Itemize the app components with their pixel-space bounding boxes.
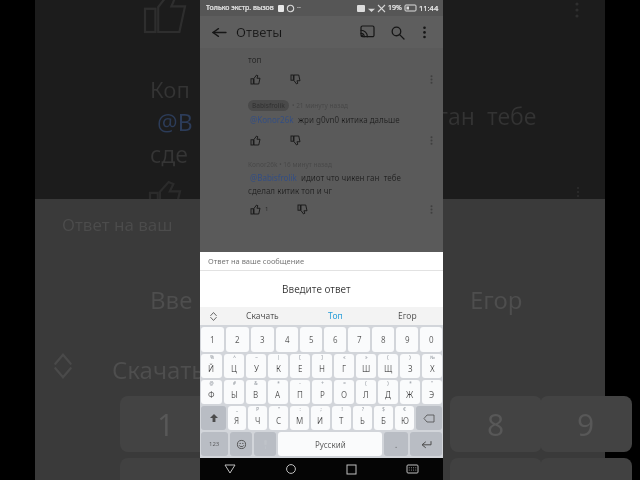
staticText: У xyxy=(254,363,259,374)
button[interactable]: Search xyxy=(385,20,409,44)
button[interactable]: ^ xyxy=(224,354,244,378)
button[interactable]: Hide keyboard xyxy=(382,458,443,480)
button[interactable]: = xyxy=(334,380,354,404)
staticText: З xyxy=(408,363,413,374)
button[interactable]: Cast xyxy=(355,20,379,44)
button[interactable]: P xyxy=(248,406,267,430)
button[interactable]: - xyxy=(290,380,310,404)
button[interactable]: ( xyxy=(378,354,398,378)
button[interactable]: ? xyxy=(353,406,372,430)
button[interactable]: Русский xyxy=(278,432,382,456)
staticText: 123 xyxy=(209,440,220,448)
button[interactable]: Back xyxy=(208,21,230,43)
button[interactable]: @ xyxy=(201,380,222,404)
button[interactable]: Period xyxy=(384,432,408,456)
staticText: № xyxy=(430,354,435,360)
button[interactable]: 8 xyxy=(372,327,394,352)
button[interactable]: % xyxy=(201,354,222,378)
button[interactable]: * xyxy=(268,380,288,404)
staticText: Х xyxy=(430,363,435,374)
button[interactable]: ! xyxy=(332,406,351,430)
button[interactable]: Скачать xyxy=(226,307,299,325)
button[interactable]: " xyxy=(269,406,288,430)
button[interactable]: 1 xyxy=(201,327,224,352)
staticText: ~ xyxy=(255,354,258,360)
button[interactable]: 4 xyxy=(276,327,298,352)
staticText: " xyxy=(431,380,433,386)
staticText: [ xyxy=(299,354,301,360)
button[interactable]: Введите ответ xyxy=(200,271,443,307)
button[interactable]: $ xyxy=(374,406,393,430)
button[interactable]: ~ xyxy=(246,354,266,378)
button[interactable]: 5 xyxy=(300,327,322,352)
button[interactable]: Comment options xyxy=(425,134,437,146)
button[interactable]: ) xyxy=(400,354,420,378)
staticText: " xyxy=(278,406,280,412)
button[interactable]: * xyxy=(400,380,420,404)
button[interactable]: Dislike xyxy=(288,133,302,147)
staticText: идиот что чикен ган тебе xyxy=(301,172,401,183)
staticText: Ж xyxy=(406,389,414,400)
button[interactable]: Backspace xyxy=(416,406,442,430)
staticText: Вве xyxy=(150,283,193,316)
button[interactable]: 6 xyxy=(324,327,346,352)
button[interactable]: : xyxy=(290,406,309,430)
staticText: = xyxy=(343,380,346,386)
button[interactable]: « xyxy=(334,354,354,378)
button[interactable]: ; xyxy=(311,406,330,430)
staticText: Егор xyxy=(398,310,417,322)
staticText: « xyxy=(343,354,346,360)
button[interactable]: 2 xyxy=(226,327,249,352)
button[interactable]: ( xyxy=(356,380,376,404)
button[interactable]: Comment options xyxy=(425,73,437,85)
staticText: Ответ на ваше сообщение xyxy=(208,256,305,266)
staticText: 2 xyxy=(235,334,240,345)
button[interactable]: Shift xyxy=(201,406,226,430)
button[interactable]: » xyxy=(356,354,376,378)
staticText: | xyxy=(277,354,280,360)
staticText: Ф xyxy=(208,389,215,400)
button[interactable]: & xyxy=(246,380,266,404)
button[interactable]: Dislike xyxy=(295,202,309,216)
button[interactable]: Back xyxy=(200,458,260,480)
button[interactable]: 9 xyxy=(396,327,418,352)
button[interactable]: [ xyxy=(290,354,310,378)
staticText: Егор xyxy=(470,283,523,316)
button[interactable]: Like xyxy=(248,202,262,216)
button[interactable]: ) xyxy=(378,380,398,404)
button[interactable]: 3 xyxy=(251,327,274,352)
staticText: Konor26k • 16 минут назад xyxy=(248,160,332,169)
button[interactable]: Егор xyxy=(371,307,443,325)
staticText: $ xyxy=(382,406,385,412)
button[interactable]: 0 xyxy=(420,327,442,352)
button[interactable]: _ xyxy=(228,406,246,430)
button[interactable]: Emoji xyxy=(230,432,252,456)
button[interactable]: More options xyxy=(413,21,435,43)
staticText: • 21 минуту назад xyxy=(292,101,348,110)
button[interactable]: Dislike xyxy=(288,72,302,86)
button[interactable]: Recents xyxy=(321,458,382,480)
staticText: . xyxy=(395,439,398,450)
button[interactable]: Like xyxy=(248,133,262,147)
button[interactable]: Expand suggestions xyxy=(200,307,226,325)
staticText: 6 xyxy=(333,334,338,345)
button[interactable]: € xyxy=(395,406,414,430)
button[interactable]: | xyxy=(268,354,288,378)
button[interactable]: Enter xyxy=(410,432,442,456)
button[interactable]: Топ xyxy=(299,307,371,325)
staticText: Е xyxy=(298,363,303,374)
button[interactable]: # xyxy=(224,380,244,404)
button[interactable]: " xyxy=(422,380,442,404)
staticText: Коп xyxy=(150,74,190,104)
staticText: ган тебе xyxy=(438,100,537,131)
button[interactable]: № xyxy=(422,354,442,378)
button[interactable]: 123 xyxy=(201,432,228,456)
button[interactable]: Home xyxy=(260,458,321,480)
button[interactable]: 7 xyxy=(348,327,370,352)
button[interactable]: Comment options xyxy=(425,203,437,215)
staticText: М xyxy=(296,415,304,426)
button[interactable]: Like xyxy=(248,72,262,86)
button[interactable]: + xyxy=(312,380,332,404)
button[interactable]: ] xyxy=(312,354,332,378)
